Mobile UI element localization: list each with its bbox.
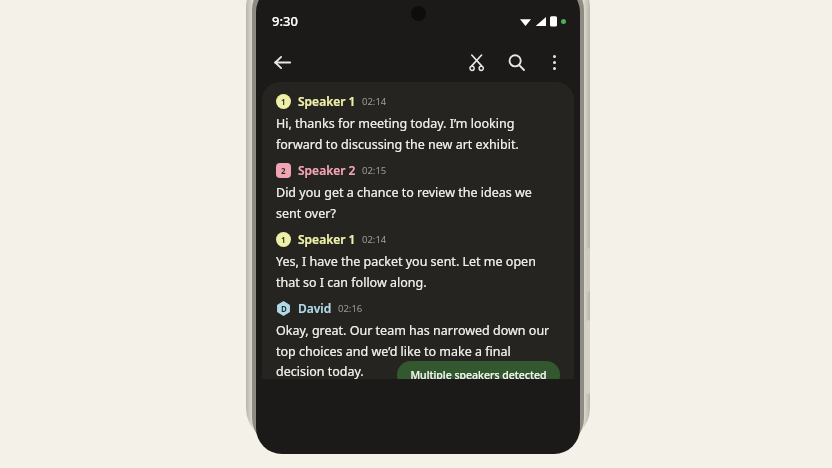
staticText: 9:30: [272, 12, 298, 30]
staticText: Speaker 2: [298, 162, 356, 178]
staticText: David: [298, 300, 332, 316]
staticText: 02:14: [362, 95, 387, 108]
button[interactable]: Cut: [458, 44, 494, 80]
staticText: Did you get a chance to review the ideas…: [276, 184, 560, 221]
staticText: Speaker 1: [298, 231, 356, 247]
staticText: Yes, I have the packet you sent. Let me …: [276, 253, 560, 290]
button[interactable]: More options: [536, 44, 572, 80]
staticText: 2: [281, 165, 286, 176]
staticText: Speaker 1: [298, 93, 356, 109]
staticText: Multiple speakers detected: [410, 368, 547, 379]
button[interactable]: 1: [276, 92, 387, 110]
button[interactable]: 1: [276, 230, 387, 248]
button[interactable]: Search: [498, 44, 534, 80]
button[interactable]: 2: [276, 161, 387, 179]
staticText: D: [281, 303, 287, 314]
staticText: Hi, thanks for meeting today. I’m lookin…: [276, 115, 560, 152]
button[interactable]: Multiple speakers detected: [397, 361, 560, 379]
staticText: 02:16: [338, 302, 363, 315]
staticText: 1: [281, 96, 286, 107]
staticText: 02:14: [362, 233, 387, 246]
button[interactable]: D: [276, 299, 363, 317]
staticText: Okay, great. Our team has narrowed down …: [276, 322, 560, 379]
button[interactable]: Back: [264, 44, 300, 80]
staticText: 1: [281, 234, 286, 245]
staticText: 02:15: [362, 164, 387, 177]
